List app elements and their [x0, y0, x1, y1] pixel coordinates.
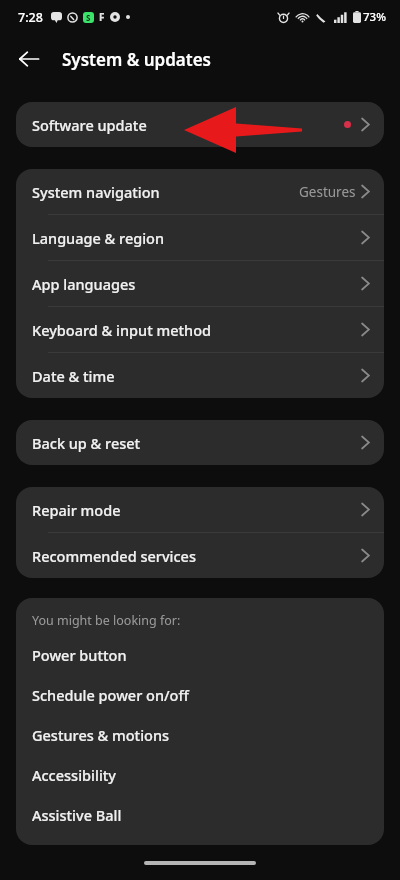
button[interactable]: Recommended services — [16, 533, 384, 578]
staticText: 7:28 — [18, 9, 43, 26]
staticText: System navigation — [32, 182, 160, 202]
staticText: You might be looking for: — [32, 612, 181, 629]
staticText: Power button — [32, 645, 127, 665]
staticText: System & updates — [62, 48, 211, 71]
button[interactable]: Keyboard & input method — [16, 307, 384, 352]
button[interactable]: System navigation — [16, 169, 384, 214]
button[interactable]: Repair mode — [16, 487, 384, 532]
button[interactable]: Gestures & motions — [16, 715, 384, 755]
staticText: Gestures — [299, 183, 356, 201]
button[interactable]: Date & time — [16, 353, 384, 398]
button[interactable]: Back — [16, 46, 42, 72]
staticText: Software update — [32, 115, 147, 135]
staticText: Keyboard & input method — [32, 320, 212, 340]
staticText: S — [86, 12, 91, 23]
button[interactable]: Power button — [16, 635, 384, 675]
button[interactable]: Software update — [16, 102, 384, 147]
button[interactable]: Accessibility — [16, 755, 384, 795]
button[interactable]: Schedule power on/off — [16, 675, 384, 715]
staticText: 73% — [363, 9, 386, 25]
staticText: Assistive Ball — [32, 805, 122, 825]
staticText: Repair mode — [32, 500, 121, 520]
staticText: Back up & reset — [32, 433, 141, 453]
staticText: Accessibility — [32, 765, 117, 785]
button[interactable]: Language & region — [16, 215, 384, 260]
staticText: Schedule power on/off — [32, 685, 189, 705]
button[interactable]: Back up & reset — [16, 420, 384, 465]
button[interactable]: Assistive Ball — [16, 795, 384, 835]
staticText: Recommended services — [32, 546, 196, 566]
staticText: Date & time — [32, 366, 115, 386]
staticText: Language & region — [32, 228, 165, 248]
staticText: F — [99, 10, 105, 24]
button[interactable]: App languages — [16, 261, 384, 306]
staticText: Gestures & motions — [32, 725, 170, 745]
staticText: App languages — [32, 274, 136, 294]
